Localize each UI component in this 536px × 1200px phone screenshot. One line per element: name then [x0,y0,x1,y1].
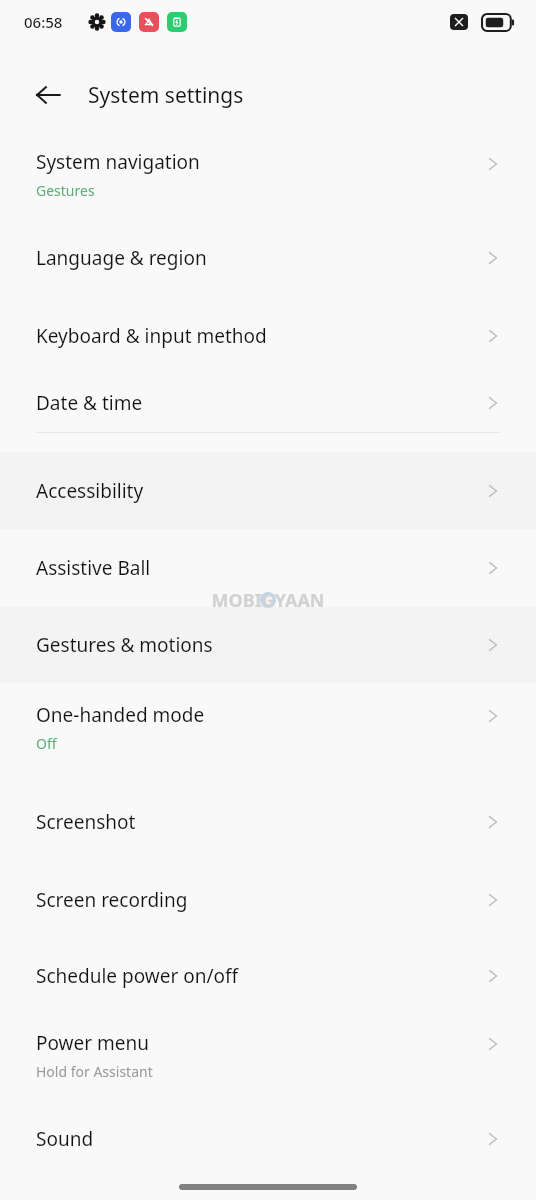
staticText: Sound [36,1126,94,1152]
staticText: Gestures & motions [36,632,213,658]
button[interactable]: Keyboard & input method [0,297,536,374]
button[interactable]: Sound [0,1109,536,1169]
staticText: Off [36,734,57,753]
staticText: Accessibility [36,478,144,504]
button[interactable]: Screenshot [0,783,536,861]
staticText: Date & time [36,390,143,416]
staticText: MOBIGYAAN [198,588,338,612]
staticText: Power menu [36,1030,150,1056]
button[interactable]: Back [20,67,76,123]
staticText: Screen recording [36,887,188,913]
staticText: Schedule power on/off [36,963,239,989]
staticText: Assistive Ball [36,555,151,581]
button[interactable]: Language & region [0,219,536,297]
staticText: Screenshot [36,809,136,835]
staticText: Language & region [36,245,207,271]
button[interactable]: Date & time [0,374,536,432]
staticText: Keyboard & input method [36,323,267,349]
button[interactable]: Schedule power on/off [0,939,536,1013]
staticText: Hold for Assistant [36,1062,153,1081]
button[interactable]: Assistive Ball [0,529,536,607]
staticText: System navigation [36,149,200,175]
button[interactable]: Power menu [0,1013,536,1109]
staticText: 06:58 [24,12,63,32]
staticText: One-handed mode [36,702,205,728]
button[interactable]: Screen recording [0,861,536,939]
staticText: System settings [88,81,244,110]
button[interactable]: System navigation [0,142,536,219]
button[interactable]: Gestures & motions [0,607,536,683]
button[interactable]: One-handed mode [0,683,536,783]
staticText: Gestures [36,181,95,200]
button[interactable]: Accessibility [0,452,536,529]
